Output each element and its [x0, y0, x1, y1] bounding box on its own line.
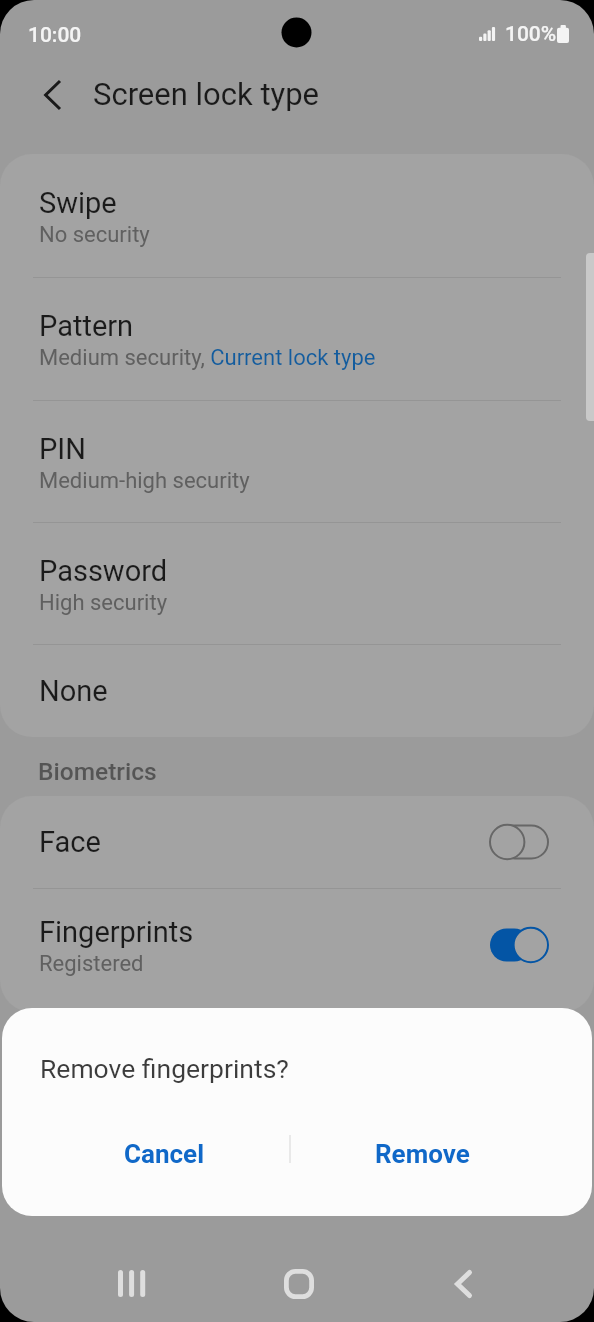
- staticText: 100%: [505, 22, 557, 47]
- staticText: Swipe: [39, 186, 117, 220]
- button[interactable]: Back: [380, 1245, 546, 1322]
- staticText: Biometrics: [38, 757, 157, 786]
- staticText: Face: [39, 825, 101, 859]
- button[interactable]: Navigate up: [12, 55, 92, 135]
- staticText: Medium-high security: [39, 468, 250, 494]
- button[interactable]: Face: [0, 796, 594, 888]
- staticText: Remove fingerprints?: [40, 1053, 289, 1084]
- button[interactable]: Fingerprints: [0, 889, 594, 1001]
- staticText: PIN: [39, 432, 86, 466]
- button[interactable]: Password: [0, 523, 594, 644]
- staticText: Remove: [375, 1139, 470, 1169]
- button[interactable]: Swipe: [0, 154, 594, 277]
- button[interactable]: Pattern: [0, 278, 594, 400]
- button[interactable]: Remove: [290, 1115, 554, 1195]
- button[interactable]: Home: [214, 1245, 380, 1322]
- button[interactable]: Turn on: [489, 823, 549, 861]
- staticText: Cancel: [124, 1139, 205, 1169]
- staticText: Screen lock type: [93, 76, 320, 112]
- button[interactable]: None: [0, 645, 594, 737]
- staticText: Pattern: [39, 309, 134, 343]
- staticText: Medium security, Current lock type: [39, 345, 376, 371]
- staticText: Fingerprints: [39, 915, 194, 949]
- button[interactable]: Recent apps: [48, 1245, 214, 1322]
- staticText: High security: [39, 590, 168, 616]
- staticText: 10:00: [28, 23, 82, 48]
- button[interactable]: PIN: [0, 401, 594, 522]
- button[interactable]: Turn off: [489, 926, 549, 964]
- staticText: None: [39, 674, 108, 708]
- staticText: No security: [39, 222, 150, 248]
- button[interactable]: Cancel: [32, 1115, 296, 1195]
- staticText: Registered: [39, 951, 144, 977]
- staticText: Password: [39, 554, 168, 588]
